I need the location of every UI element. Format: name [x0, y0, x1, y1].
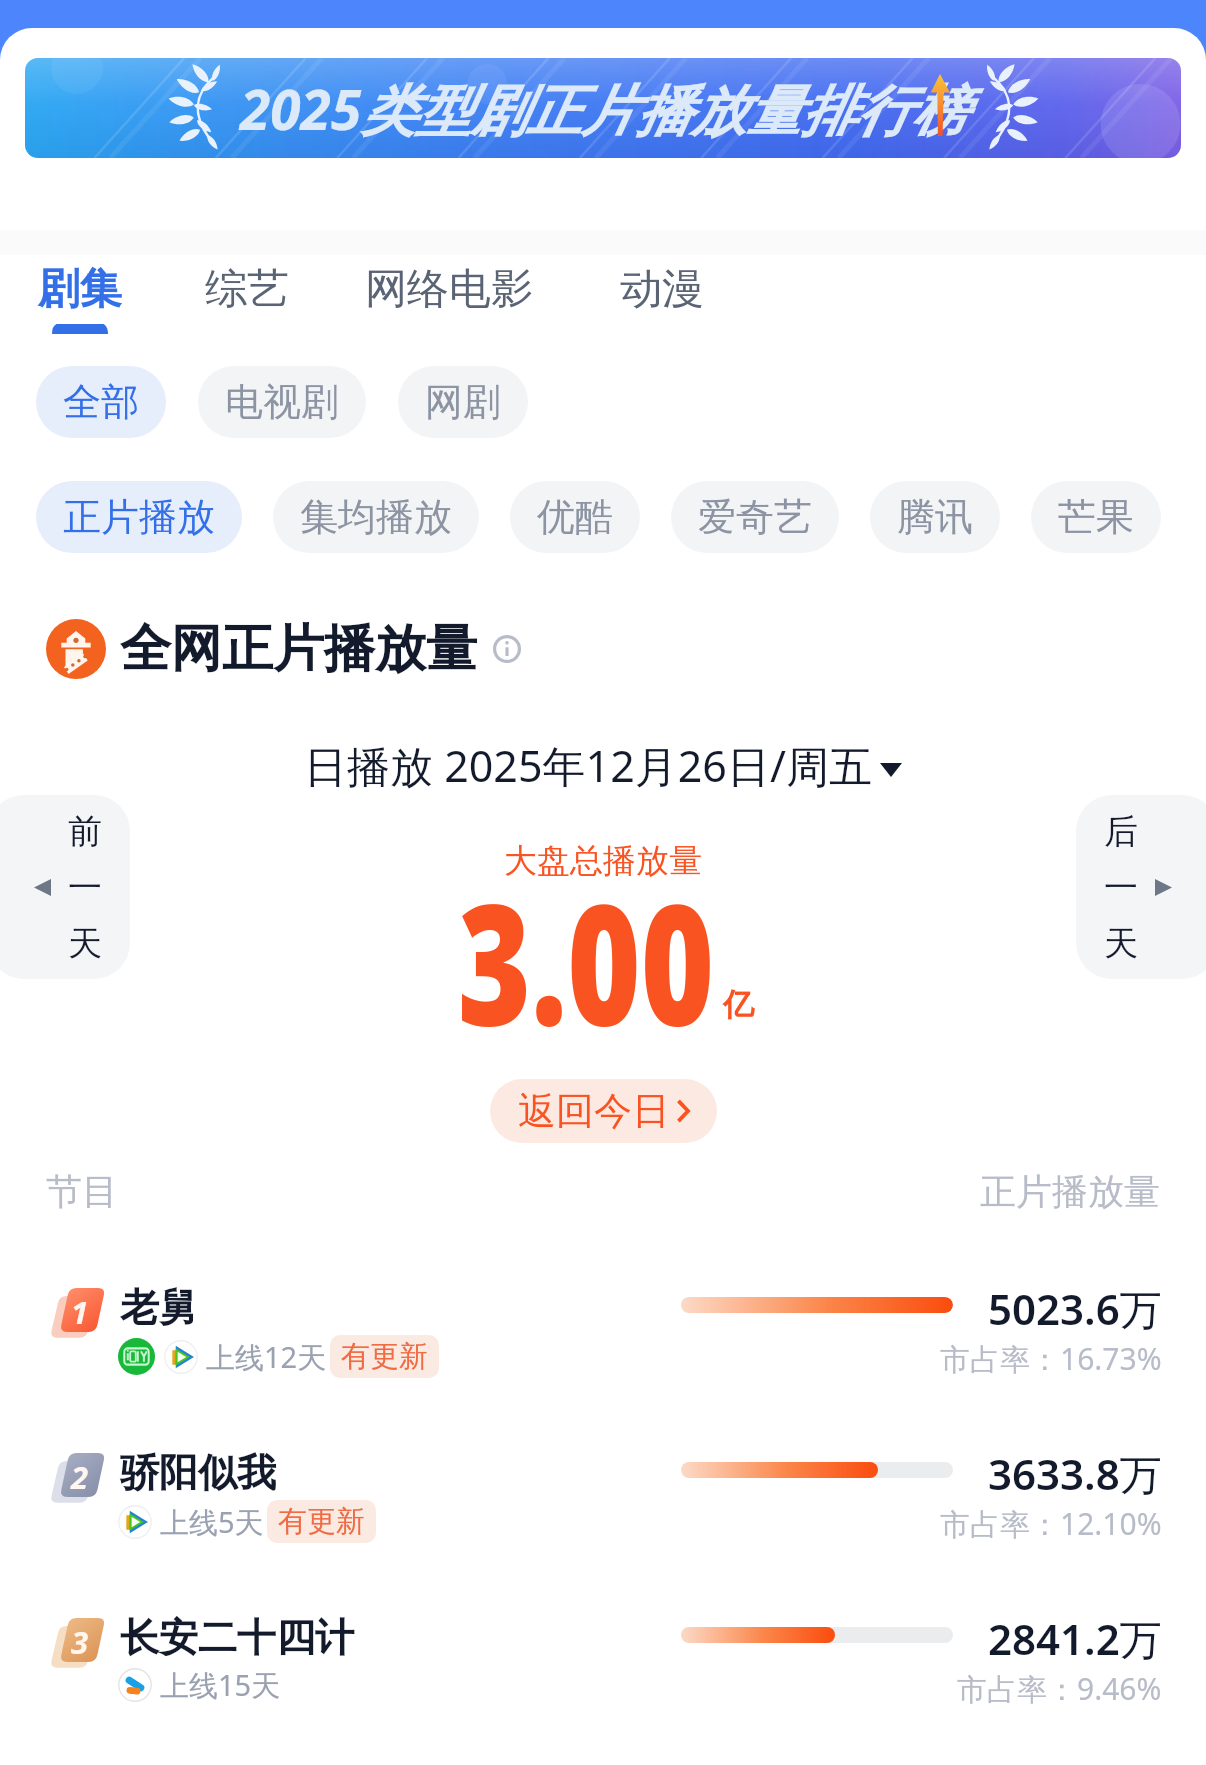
staticText: 3	[71, 1621, 89, 1663]
button[interactable]: 网络电影	[365, 263, 533, 334]
staticText: 正片播放量	[980, 1169, 1160, 1214]
button[interactable]: 2	[0, 1439, 1206, 1579]
button[interactable]: 芒果	[1031, 481, 1161, 553]
button[interactable]: 返回今日	[490, 1079, 717, 1143]
staticText: 综艺	[205, 263, 289, 316]
staticText: 老舅	[120, 1283, 198, 1332]
staticText: 1	[71, 1291, 89, 1333]
staticText: 网络电影	[365, 263, 533, 316]
staticText: 天	[1104, 922, 1138, 965]
staticText: 上线12天	[206, 1337, 327, 1377]
button[interactable]: 腾讯	[870, 481, 1000, 553]
staticText: 后	[1104, 810, 1138, 853]
staticText: 剧集	[38, 263, 122, 316]
staticText: 集均播放	[300, 493, 452, 541]
button[interactable]: 全部	[36, 366, 166, 438]
staticText: 电视剧	[225, 378, 339, 426]
staticText: 爱奇艺	[698, 493, 812, 541]
button[interactable]: 电视剧	[198, 366, 366, 438]
staticText: 一	[1104, 866, 1138, 909]
staticText: 正片播放	[63, 493, 215, 541]
staticText: 市占率：12.10%	[940, 1503, 1162, 1544]
staticText: 大盘总播放量	[504, 840, 702, 882]
staticText: 亿	[723, 985, 754, 1024]
staticText: 上线15天	[160, 1665, 281, 1705]
staticText: 一	[68, 866, 102, 909]
staticText: 2025类型剧正片播放量排行榜	[240, 71, 967, 146]
staticText: 市占率：9.46%	[957, 1668, 1162, 1709]
staticText: 2841.2万	[988, 1610, 1162, 1667]
staticText: 市占率：16.73%	[940, 1338, 1162, 1379]
button[interactable]: 优酷	[510, 481, 640, 553]
staticText: 3633.8万	[988, 1445, 1162, 1502]
staticText: 长安二十四计	[120, 1613, 354, 1662]
staticText: 天	[68, 922, 102, 965]
staticText: 5023.6万	[988, 1280, 1162, 1337]
staticText: 有更新	[278, 1503, 365, 1540]
staticText: 骄阳似我	[120, 1448, 276, 1497]
button[interactable]: 综艺	[205, 263, 289, 334]
button[interactable]: 后一天	[1076, 795, 1206, 979]
staticText: 3.00	[458, 848, 714, 1038]
staticText: 上线5天	[160, 1502, 264, 1542]
staticText: 网剧	[425, 378, 501, 426]
button[interactable]: 剧集	[38, 263, 122, 334]
staticText: 优酷	[537, 493, 613, 541]
staticText: 返回今日	[518, 1087, 670, 1135]
button[interactable]: 日播放 2025年12月26日/周五	[304, 736, 902, 795]
button[interactable]: 网剧	[398, 366, 528, 438]
staticText: 有更新	[341, 1338, 428, 1375]
staticText: 前	[68, 810, 102, 853]
button[interactable]: 爱奇艺	[671, 481, 839, 553]
button[interactable]: 动漫	[620, 263, 704, 334]
staticText: 腾讯	[897, 493, 973, 541]
button[interactable]: 集均播放	[273, 481, 479, 553]
staticText: 全部	[63, 378, 139, 426]
button[interactable]: 前一天	[0, 795, 130, 979]
button[interactable]: 3	[0, 1604, 1206, 1744]
staticText: 动漫	[620, 263, 704, 316]
staticText: 全网正片播放量	[120, 617, 477, 681]
button[interactable]: 1	[0, 1274, 1206, 1414]
staticText: 日播放 2025年12月26日/周五	[304, 736, 872, 795]
staticText: 节目	[46, 1169, 118, 1214]
staticText: 2	[71, 1456, 89, 1498]
button[interactable]: 正片播放	[36, 481, 242, 553]
staticText: 芒果	[1058, 493, 1134, 541]
